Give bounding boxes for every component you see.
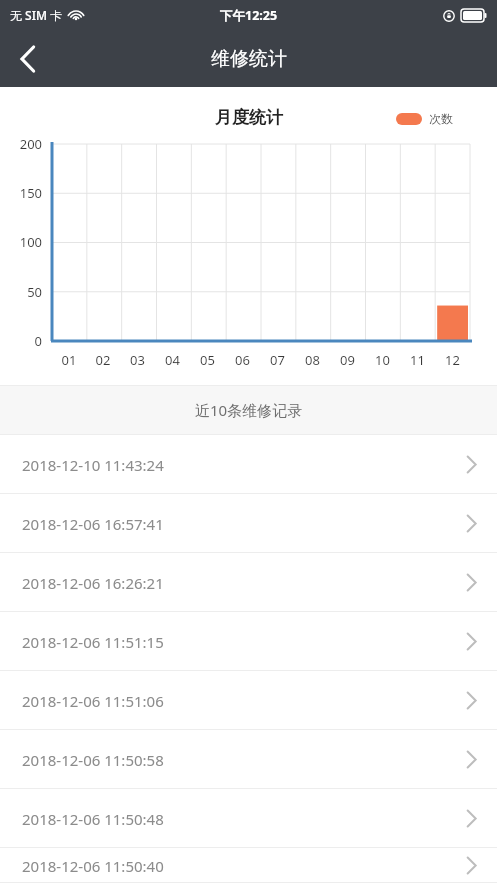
button[interactable]: Back (0, 30, 56, 87)
staticText: 10 (365, 351, 400, 369)
staticText: 2018-12-06 11:51:06 (22, 691, 164, 711)
staticText: 150 (0, 184, 42, 202)
staticText: 200 (0, 135, 42, 153)
staticText: 03 (120, 351, 155, 369)
staticText: 2018-12-06 11:50:58 (22, 750, 164, 770)
button[interactable]: 2018-12-06 11:50:40 (0, 848, 497, 883)
staticText: 11 (400, 351, 435, 369)
staticText: 04 (155, 351, 190, 369)
staticText: 2018-12-06 11:50:40 (22, 856, 164, 876)
staticText: 次数 (429, 111, 453, 126)
staticText: 下午12:25 (220, 7, 278, 24)
staticText: 05 (190, 351, 225, 369)
staticText: 2018-12-06 11:50:48 (22, 809, 164, 829)
button[interactable]: 2018-12-06 11:50:58 (0, 730, 497, 789)
staticText: 08 (295, 351, 330, 369)
staticText: 月度统计 (215, 107, 283, 128)
button[interactable]: 2018-12-10 11:43:24 (0, 435, 497, 494)
button[interactable]: 2018-12-06 11:51:06 (0, 671, 497, 730)
button[interactable]: 2018-12-06 11:51:15 (0, 612, 497, 671)
staticText: 0 (0, 332, 42, 350)
staticText: 02 (86, 351, 120, 369)
staticText: 12 (435, 351, 470, 369)
staticText: 09 (330, 351, 365, 369)
staticText: 无 SIM 卡 (10, 7, 63, 23)
staticText: 2018-12-06 11:51:15 (22, 632, 164, 652)
button[interactable]: 2018-12-06 16:26:21 (0, 553, 497, 612)
staticText: 07 (260, 351, 295, 369)
staticText: 06 (225, 351, 260, 369)
staticText: 2018-12-10 11:43:24 (22, 455, 164, 475)
staticText: 近10条维修记录 (195, 400, 303, 420)
button[interactable]: 2018-12-06 16:57:41 (0, 494, 497, 553)
staticText: 2018-12-06 16:26:21 (22, 573, 164, 593)
staticText: 100 (0, 233, 42, 251)
staticText: 2018-12-06 16:57:41 (22, 514, 164, 534)
staticText: 维修统计 (211, 47, 287, 71)
staticText: 01 (52, 351, 86, 369)
staticText: 50 (0, 283, 42, 301)
button[interactable]: 2018-12-06 11:50:48 (0, 789, 497, 848)
